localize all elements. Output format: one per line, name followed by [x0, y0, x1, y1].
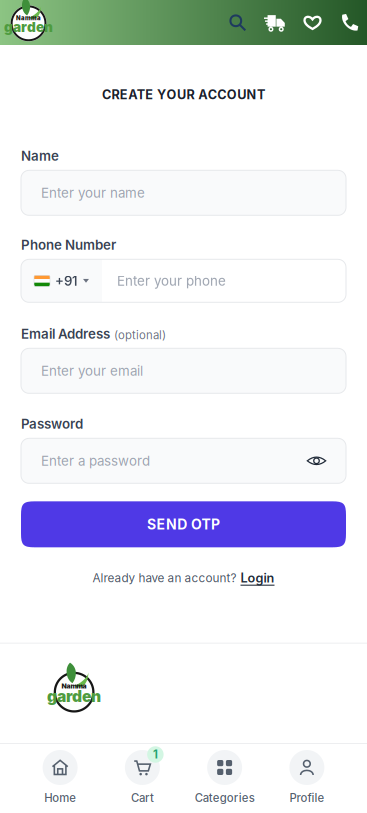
- staticText: Enter your email: [41, 363, 143, 379]
- staticText: Cart: [131, 791, 154, 805]
- staticText: Namma: [62, 682, 87, 690]
- staticText: Name: [21, 148, 59, 164]
- button[interactable]: Home: [19, 750, 101, 805]
- button[interactable]: 1: [101, 750, 183, 805]
- staticText: Password: [21, 416, 83, 432]
- button[interactable]: Wishlist: [303, 13, 322, 32]
- staticText: Login: [240, 570, 274, 586]
- staticText: (optional): [114, 328, 166, 342]
- staticText: Already have an account?: [92, 571, 236, 585]
- staticText: SEND OTP: [147, 516, 220, 533]
- button[interactable]: Profile: [266, 750, 348, 805]
- staticText: Home: [44, 791, 76, 805]
- button[interactable]: Categories: [183, 750, 266, 805]
- staticText: CREATE YOUR ACCOUNT: [102, 87, 265, 102]
- button[interactable]: Search: [229, 14, 246, 31]
- button[interactable]: Call us: [340, 13, 359, 32]
- staticText: Profile: [289, 791, 324, 805]
- staticText: +91: [55, 273, 78, 289]
- staticText: Namma: [16, 14, 41, 22]
- button[interactable]: Show password: [307, 455, 326, 467]
- button[interactable]: +91: [21, 259, 102, 302]
- staticText: 1: [153, 748, 158, 761]
- staticText: garden: [47, 687, 101, 706]
- button[interactable]: Track order: [264, 12, 285, 33]
- staticText: Enter your name: [41, 185, 145, 201]
- button[interactable]: SEND OTP: [21, 501, 346, 547]
- staticText: Phone Number: [21, 237, 116, 253]
- staticText: Email Address: [21, 326, 110, 342]
- staticText: Enter your phone: [117, 273, 226, 289]
- staticText: garden: [4, 19, 53, 35]
- button[interactable]: Login: [240, 570, 274, 586]
- staticText: Categories: [195, 791, 255, 805]
- staticText: Enter a password: [41, 453, 150, 469]
